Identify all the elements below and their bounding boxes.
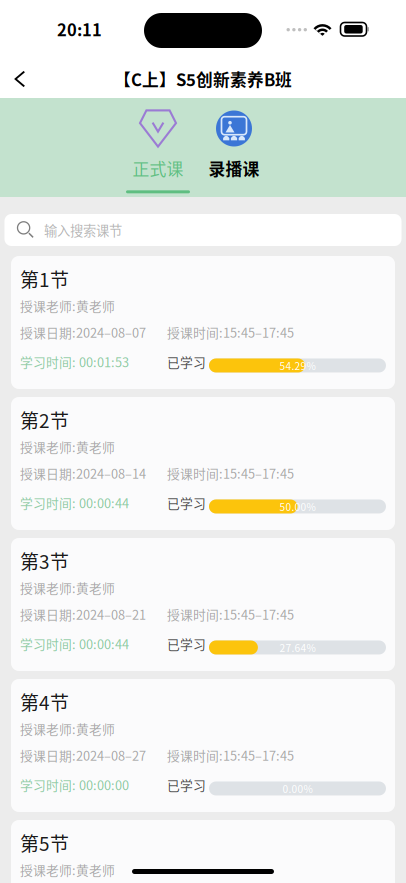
- staticText: 20:11: [57, 17, 102, 41]
- button[interactable]: 输入搜索课节: [4, 214, 401, 246]
- staticText: 已学习: [167, 634, 206, 653]
- button[interactable]: 第4节: [11, 679, 395, 812]
- staticText: 54.29%: [279, 358, 315, 373]
- staticText: 授课日期:2024–08–27: [20, 746, 146, 764]
- staticText: 授课老师:黄老师: [20, 296, 115, 315]
- staticText: 授课时间:15:45–17:45: [167, 464, 294, 482]
- staticText: 授课时间:15:45–17:45: [167, 605, 294, 623]
- button[interactable]: 第2节: [11, 397, 395, 530]
- staticText: 已学习: [167, 775, 206, 794]
- staticText: 【C上】S5创新素养B班: [114, 67, 292, 91]
- staticText: 授课日期:2024–08–07: [20, 323, 146, 341]
- button[interactable]: Back: [0, 62, 26, 88]
- button[interactable]: 第3节: [11, 538, 395, 671]
- staticText: 授课日期:2024–08–14: [20, 464, 146, 482]
- staticText: 第5节: [20, 829, 69, 856]
- staticText: 授课老师:黄老师: [20, 578, 115, 597]
- staticText: 学习时间: 00:00:00: [20, 775, 129, 794]
- staticText: 27.64%: [279, 640, 315, 655]
- staticText: 授课老师:黄老师: [20, 719, 115, 738]
- staticText: 已学习: [167, 352, 206, 371]
- staticText: 第1节: [20, 265, 69, 292]
- staticText: 录播课: [208, 156, 259, 180]
- staticText: 50.00%: [279, 499, 315, 514]
- staticText: 已学习: [167, 493, 206, 512]
- staticText: 第2节: [20, 406, 69, 433]
- staticText: 授课老师:黄老师: [20, 860, 115, 879]
- staticText: 第4节: [20, 688, 69, 715]
- button[interactable]: 正式课: [120, 98, 196, 197]
- staticText: 学习时间: 00:00:44: [20, 634, 129, 653]
- staticText: 第3节: [20, 547, 69, 574]
- staticText: 0.00%: [282, 781, 312, 796]
- staticText: 输入搜索课节: [44, 220, 122, 240]
- button[interactable]: 第1节: [11, 256, 395, 389]
- staticText: 学习时间: 00:00:44: [20, 493, 129, 512]
- staticText: 正式课: [132, 156, 183, 180]
- staticText: 授课日期:2024–08–21: [20, 605, 146, 623]
- staticText: 授课时间:15:45–17:45: [167, 323, 294, 341]
- button[interactable]: 第5节: [11, 820, 395, 883]
- staticText: 学习时间: 00:01:53: [20, 352, 129, 371]
- button[interactable]: 录播课: [196, 98, 272, 197]
- staticText: 授课时间:15:45–17:45: [167, 746, 294, 764]
- staticText: 授课老师:黄老师: [20, 437, 115, 456]
